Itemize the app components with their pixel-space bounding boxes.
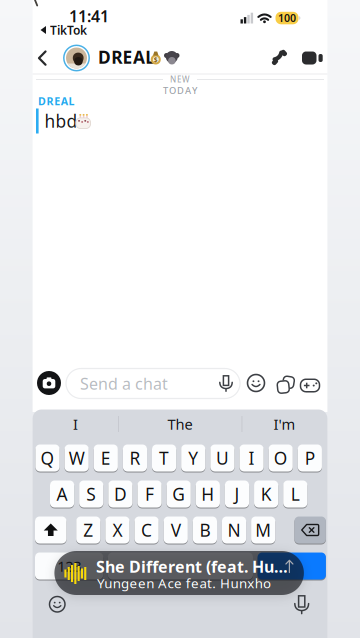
button[interactable]: O	[269, 444, 293, 472]
button[interactable]: Back to TikTok	[40, 24, 100, 36]
staticText: H	[201, 482, 214, 505]
button[interactable]: E	[94, 444, 118, 472]
staticText: 123	[57, 556, 81, 576]
button[interactable]: Stickers	[274, 374, 292, 391]
button[interactable]: Space	[108, 552, 253, 580]
button[interactable]: Q	[35, 444, 60, 472]
staticText: M	[255, 518, 271, 541]
staticText: TODAY	[163, 84, 197, 97]
button[interactable]: R	[123, 444, 147, 472]
staticText: W	[69, 446, 85, 469]
staticText: G	[172, 482, 185, 505]
button[interactable]: G	[167, 480, 191, 508]
staticText: S	[86, 482, 96, 505]
staticText: C	[141, 518, 152, 541]
staticText: I	[73, 414, 78, 434]
button[interactable]: J	[225, 480, 249, 508]
button[interactable]: V	[164, 516, 188, 544]
button[interactable]: Dictation	[294, 595, 309, 614]
staticText: O	[274, 446, 288, 469]
staticText: TikTok	[50, 22, 87, 38]
button[interactable]: B	[193, 516, 217, 544]
button[interactable]: DREAL profile	[66, 47, 87, 68]
staticText: Send a chat	[80, 373, 168, 394]
staticText: B	[199, 518, 210, 541]
button[interactable]: Delete	[294, 516, 326, 544]
staticText: Q	[40, 446, 54, 469]
button[interactable]: I	[239, 444, 264, 472]
staticText: $	[154, 55, 158, 64]
button[interactable]: X	[105, 516, 129, 544]
button[interactable]: She Different by Yungeen Ace	[54, 551, 304, 595]
button[interactable]: A	[50, 480, 74, 508]
button[interactable]: Camera	[37, 371, 61, 395]
staticText: hbd	[44, 109, 77, 132]
button[interactable]: K	[254, 480, 278, 508]
staticText: F	[145, 482, 154, 505]
button[interactable]: Send	[258, 552, 326, 580]
button[interactable]: T	[152, 444, 176, 472]
button[interactable]: N	[222, 516, 246, 544]
staticText: The	[167, 414, 192, 434]
button[interactable]: The	[119, 410, 241, 438]
staticText: J	[234, 482, 239, 505]
staticText: X	[112, 518, 122, 541]
button[interactable]: Z	[76, 516, 100, 544]
button[interactable]: Games	[300, 374, 319, 391]
staticText: K	[261, 482, 272, 505]
staticText: I	[248, 446, 254, 469]
staticText: T	[159, 446, 169, 469]
button[interactable]: M	[251, 516, 275, 544]
button[interactable]: C	[134, 516, 159, 544]
staticText: R	[129, 446, 140, 469]
button[interactable]: W	[64, 444, 89, 472]
button[interactable]: Back	[34, 49, 52, 67]
staticText: U	[216, 446, 229, 469]
button[interactable]: U	[210, 444, 234, 472]
button[interactable]: Emoji keyboard	[49, 596, 65, 612]
button[interactable]: H	[196, 480, 220, 508]
staticText: E	[101, 446, 111, 469]
button[interactable]: F	[137, 480, 162, 508]
staticText: V	[171, 518, 181, 541]
button[interactable]: 123	[35, 552, 103, 580]
staticText: 11:41	[69, 5, 109, 27]
button[interactable]: Y	[181, 444, 205, 472]
staticText: N	[227, 518, 240, 541]
button[interactable]: L	[283, 480, 307, 508]
button[interactable]: I	[34, 410, 118, 438]
staticText: P	[305, 446, 315, 469]
staticText: NEW	[170, 74, 190, 85]
staticText: A	[57, 482, 68, 505]
staticText: Z	[83, 518, 93, 541]
staticText: D	[114, 482, 127, 505]
button[interactable]: Emoji	[247, 374, 264, 391]
staticText: Y	[188, 446, 198, 469]
button[interactable]: Send a chat	[66, 368, 240, 398]
button[interactable]: Video call	[302, 49, 324, 67]
button[interactable]: P	[298, 444, 322, 472]
staticText: DREAL	[38, 94, 74, 108]
staticText: L	[291, 482, 300, 505]
button[interactable]: Shift	[35, 516, 66, 544]
button[interactable]: Voice note	[219, 375, 233, 392]
staticText: I'm	[273, 414, 295, 434]
staticText: She Different (feat. Hu…	[96, 556, 288, 577]
button[interactable]: S	[79, 480, 103, 508]
staticText: DREAL	[98, 45, 155, 68]
staticText: 100	[278, 11, 296, 25]
button[interactable]: Voice call	[270, 48, 288, 66]
button[interactable]: D	[108, 480, 132, 508]
button[interactable]: I'm	[242, 410, 326, 438]
staticText: Yungeen Ace feat. Hunxho	[97, 574, 271, 592]
